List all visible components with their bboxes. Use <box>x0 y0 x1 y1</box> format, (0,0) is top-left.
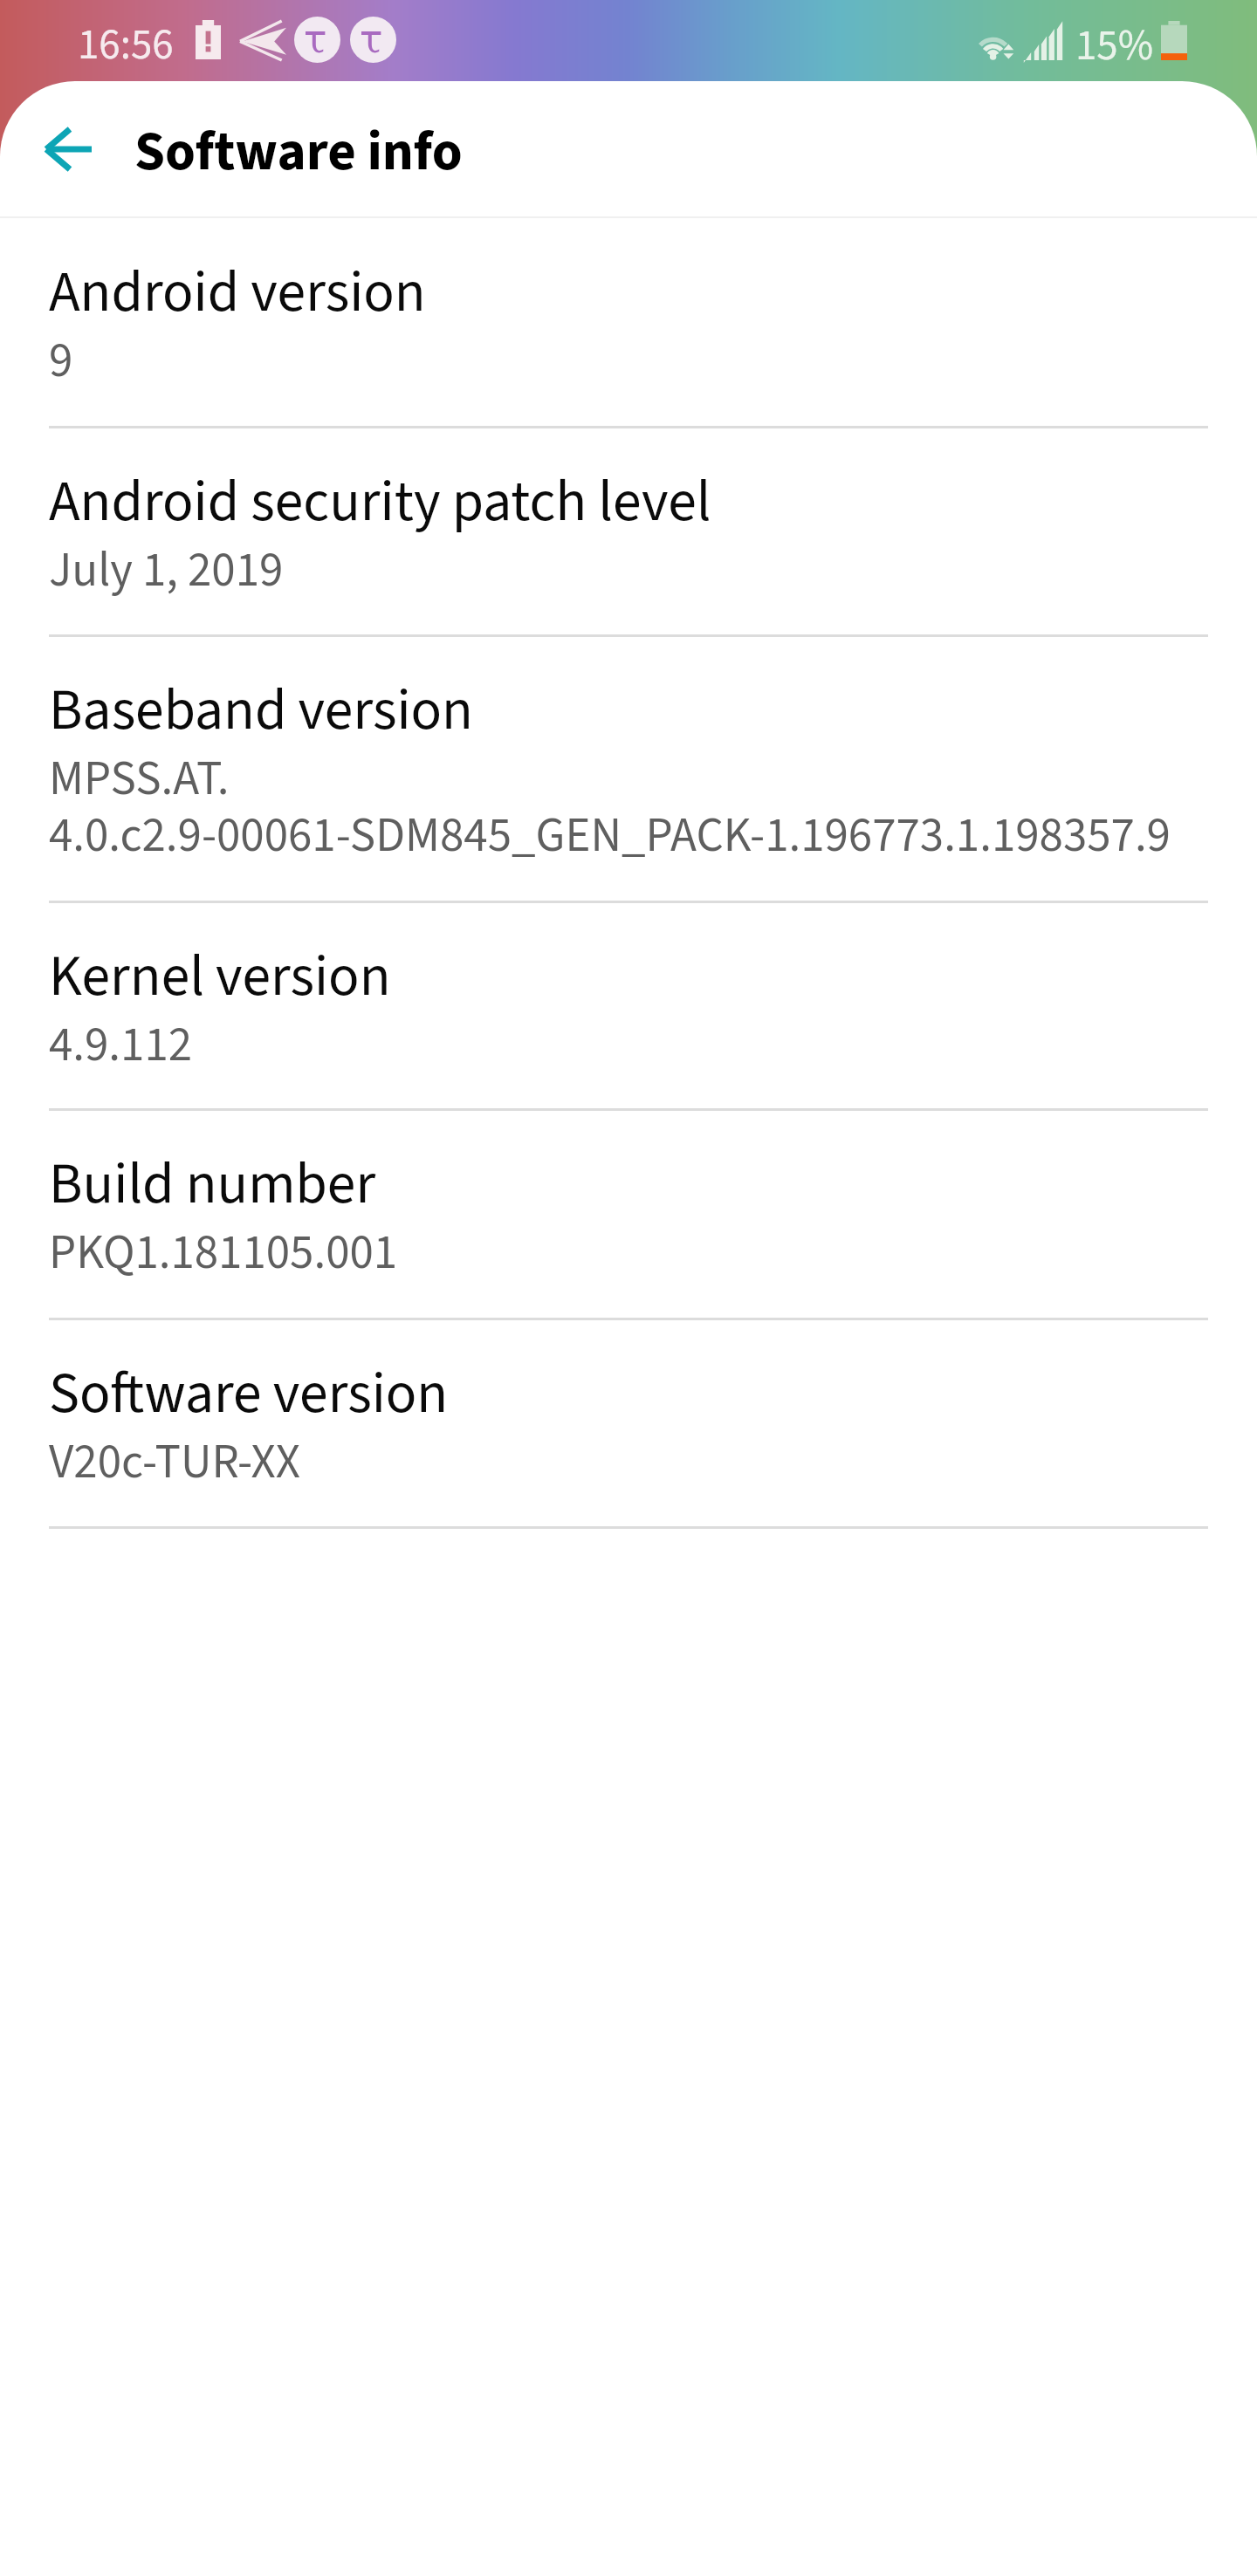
staticText: Software info <box>134 113 463 191</box>
button[interactable] <box>0 426 1257 634</box>
button[interactable] <box>0 1318 1257 1526</box>
staticText: 4.9.112 <box>49 1011 193 1079</box>
staticText: 9 <box>49 327 73 395</box>
staticText: Software version <box>49 1353 449 1435</box>
staticText: 15% <box>1075 16 1154 77</box>
button[interactable] <box>0 1108 1257 1318</box>
button[interactable] <box>0 216 1257 426</box>
staticText: July 1, 2019 <box>49 537 284 605</box>
button[interactable] <box>0 634 1257 901</box>
button[interactable]: Back <box>0 81 1257 216</box>
button[interactable] <box>0 901 1257 1108</box>
staticText: PKQ1.181105.001 <box>49 1219 398 1287</box>
staticText: MPSS.AT. <box>49 745 230 813</box>
staticText: Kernel version <box>49 936 391 1017</box>
staticText: Baseband version <box>49 670 473 751</box>
staticText: 16:56 <box>78 15 174 76</box>
staticText: Build number <box>49 1144 376 1225</box>
staticText: Android version <box>49 252 426 333</box>
staticText: V20c-TUR-XX <box>49 1428 301 1497</box>
staticText: Android security patch level <box>49 462 711 543</box>
staticText: 4.0.c2.9-00061-SDM845_GEN_PACK-1.196773.… <box>49 802 1171 870</box>
